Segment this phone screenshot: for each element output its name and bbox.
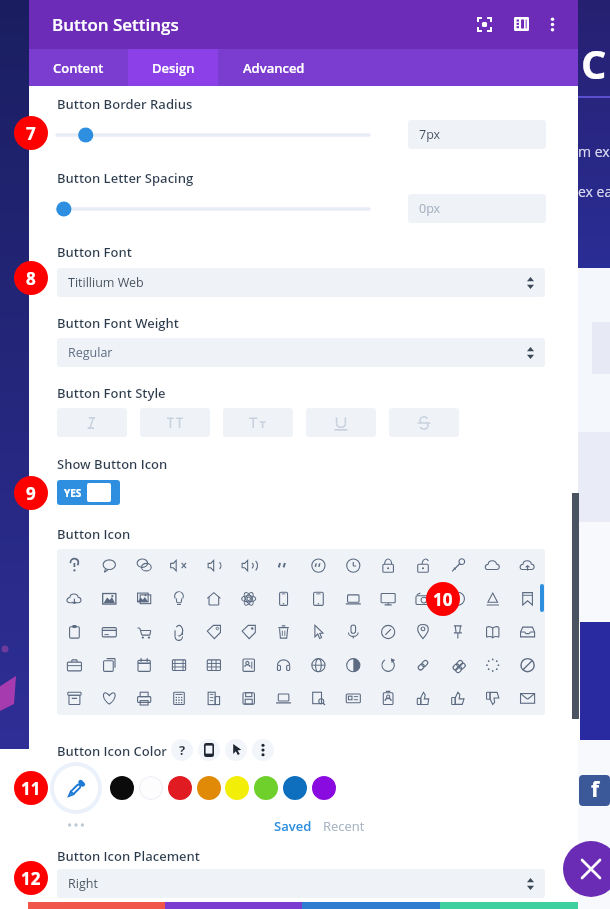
button[interactable]: Focus module: [471, 11, 497, 37]
button[interactable]: Colour swatch: [224, 775, 250, 801]
staticText: Button Font: [57, 243, 132, 261]
button[interactable]: Titillium Web: [57, 268, 545, 297]
staticText: m exe: [578, 142, 610, 161]
button[interactable]: 7px: [408, 120, 546, 149]
button[interactable]: Help: [171, 739, 193, 761]
staticText: C: [581, 36, 607, 90]
button[interactable]: Advanced: [218, 49, 330, 86]
staticText: f: [591, 775, 600, 804]
staticText: 0px: [419, 200, 441, 217]
staticText: 7px: [419, 126, 441, 143]
button[interactable]: Content: [29, 49, 128, 86]
staticText: 7: [26, 122, 36, 145]
button[interactable]: Right: [57, 869, 545, 898]
button[interactable]: Saved: [274, 817, 312, 835]
button[interactable]: Share on Facebook: [579, 775, 610, 806]
staticText: Right: [68, 875, 98, 892]
staticText: YES: [64, 486, 82, 500]
button[interactable]: Regular: [57, 338, 545, 367]
staticText: ?: [179, 741, 186, 759]
staticText: 11: [21, 777, 41, 800]
button[interactable]: Slider: [49, 194, 379, 223]
staticText: Advanced: [243, 59, 305, 77]
staticText: 9: [26, 482, 36, 505]
button[interactable]: Colour swatch: [109, 775, 135, 801]
button[interactable]: Hover state: [225, 739, 247, 761]
button[interactable]: 0px: [408, 194, 546, 223]
staticText: Content: [53, 59, 104, 77]
button[interactable]: YES: [57, 480, 120, 505]
staticText: Button Font Weight: [57, 314, 179, 332]
staticText: 10: [433, 588, 453, 611]
button[interactable]: Pick colour: [54, 766, 98, 810]
button[interactable]: More options: [252, 739, 274, 761]
button[interactable]: Recent: [323, 817, 365, 835]
staticText: ex ea: [578, 182, 610, 201]
staticText: Titillium Web: [68, 274, 144, 291]
staticText: Button Icon Placement: [57, 847, 200, 865]
button[interactable]: Font style option: [57, 408, 127, 437]
staticText: Button Icon: [57, 525, 131, 543]
button[interactable]: Font style option: [306, 408, 376, 437]
button[interactable]: Colour swatch: [282, 775, 308, 801]
staticText: Show Button Icon: [57, 455, 168, 473]
staticText: 12: [21, 867, 41, 890]
button[interactable]: Colour swatch: [196, 775, 222, 801]
staticText: Button Letter Spacing: [57, 169, 194, 187]
button[interactable]: More options: [539, 11, 565, 37]
staticText: Design: [152, 59, 195, 77]
button[interactable]: Font style option: [140, 408, 210, 437]
button[interactable]: Font style option: [223, 408, 293, 437]
button[interactable]: Colour swatch: [311, 775, 337, 801]
button[interactable]: Colour swatch: [138, 775, 164, 801]
staticText: Button Font Style: [57, 384, 166, 402]
button[interactable]: Design: [128, 49, 218, 86]
button[interactable]: Font style option: [389, 408, 459, 437]
button[interactable]: Close: [563, 841, 610, 897]
button[interactable]: Colour swatch: [253, 775, 279, 801]
button[interactable]: Change layout: [508, 11, 534, 37]
staticText: Button Border Radius: [57, 95, 193, 113]
button[interactable]: Slider: [49, 120, 379, 149]
staticText: Regular: [68, 344, 113, 361]
staticText: Button Settings: [52, 13, 179, 36]
button[interactable]: Colour swatch: [167, 775, 193, 801]
button[interactable]: Responsive: [198, 739, 220, 761]
staticText: 8: [26, 267, 36, 290]
staticText: Button Icon Color: [57, 742, 167, 760]
